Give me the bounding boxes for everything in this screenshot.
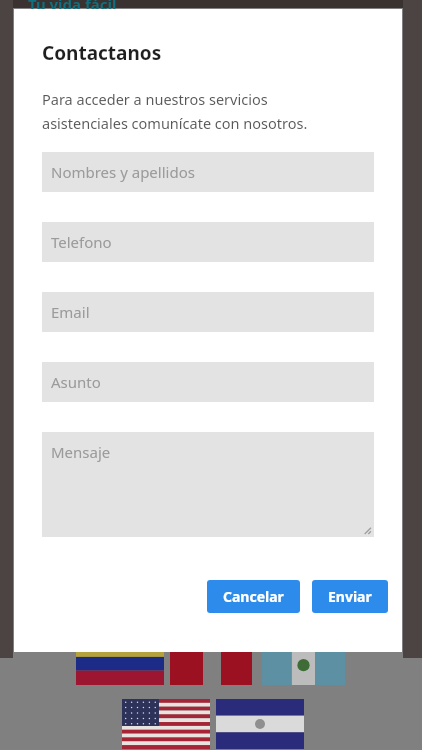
button[interactable]: Enviar — [312, 580, 388, 613]
button[interactable]: Nombres y apellidos — [42, 152, 374, 192]
button[interactable]: Asunto — [42, 362, 374, 402]
staticText: Asunto — [51, 372, 101, 392]
staticText: Tu vida fácil — [28, 0, 117, 14]
staticText: Contactanos — [42, 40, 162, 66]
staticText: Email — [51, 302, 90, 322]
button[interactable]: Telefono — [42, 222, 374, 262]
staticText: Mensaje — [51, 442, 111, 462]
button[interactable]: Email — [42, 292, 374, 332]
staticText: Telefono — [51, 232, 112, 252]
staticText: Nombres y apellidos — [51, 162, 195, 182]
staticText: Cancelar — [223, 587, 284, 606]
staticText: Para acceder a nuestros servicios asiste… — [42, 89, 308, 133]
button[interactable]: Cancelar — [207, 580, 300, 613]
staticText: Enviar — [328, 587, 372, 606]
button[interactable]: Mensaje — [42, 432, 374, 537]
